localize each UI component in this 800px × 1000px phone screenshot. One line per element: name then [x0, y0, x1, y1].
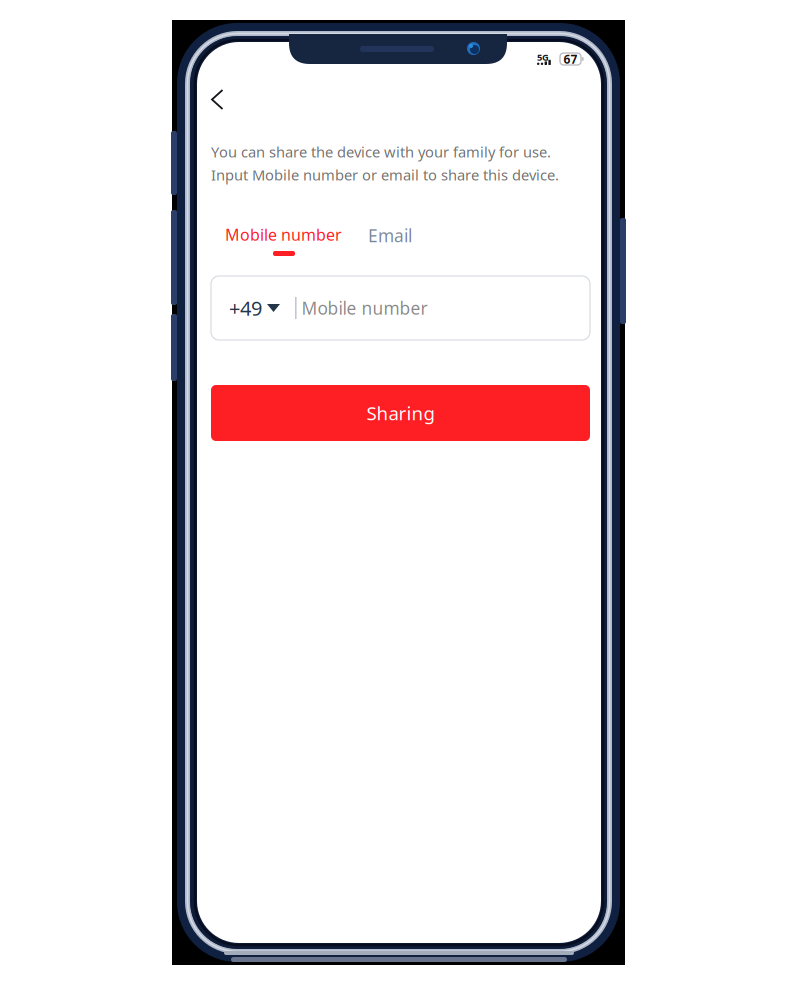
staticText: 5G	[537, 51, 549, 63]
button[interactable]: Email	[368, 224, 420, 262]
button[interactable]: Back	[208, 84, 240, 116]
staticText: +49	[229, 295, 262, 321]
staticText: Email	[368, 224, 412, 247]
button[interactable]: +49	[211, 276, 590, 340]
staticText: Input Mobile number or email to share th…	[211, 165, 559, 184]
button[interactable]: Sharing	[211, 385, 590, 441]
button[interactable]: Mobile number	[225, 224, 347, 262]
staticText: Sharing	[366, 401, 434, 425]
staticText: 67	[563, 51, 577, 67]
staticText: Mobile number	[302, 296, 428, 319]
staticText: Mobile number	[225, 224, 342, 245]
staticText: You can share the device with your famil…	[211, 142, 551, 161]
